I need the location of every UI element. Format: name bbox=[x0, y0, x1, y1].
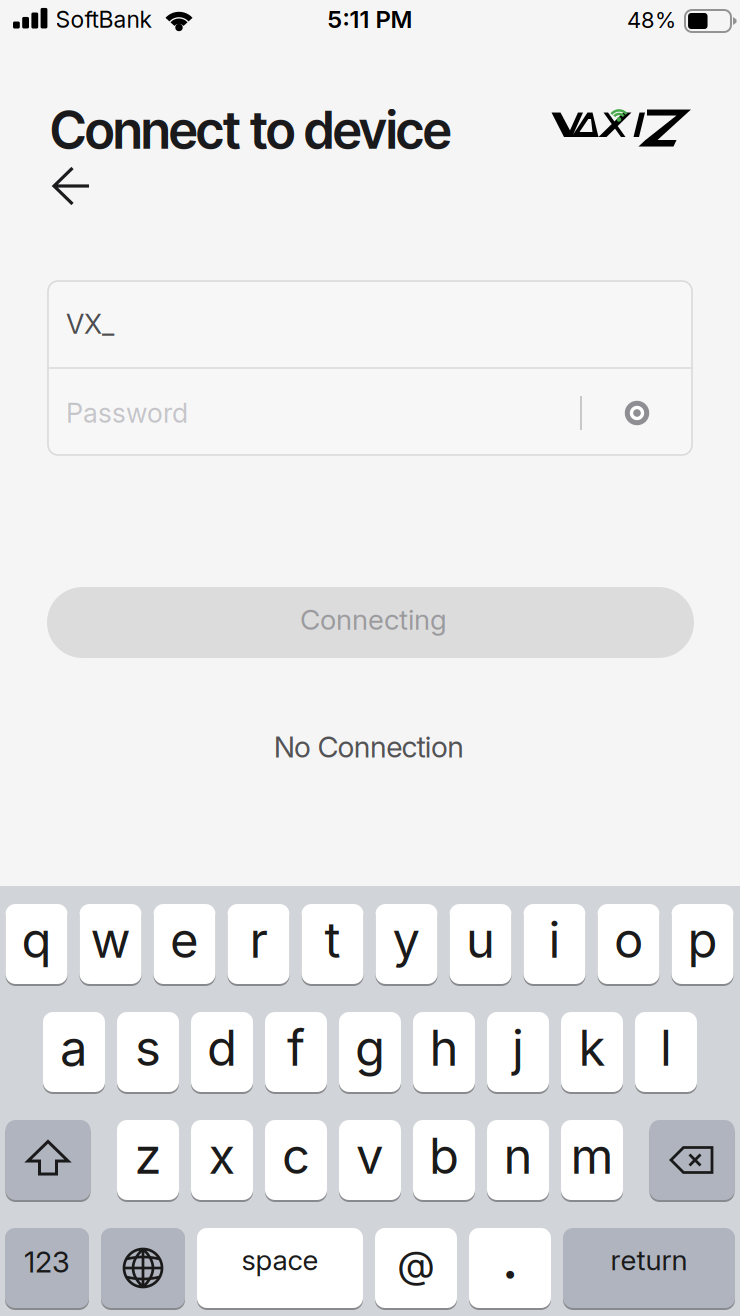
button[interactable]: l bbox=[635, 1011, 697, 1093]
button[interactable]: h bbox=[413, 1011, 475, 1093]
button[interactable]: return bbox=[563, 1227, 735, 1309]
button[interactable]: r bbox=[227, 903, 289, 985]
staticText: VX_ bbox=[66, 308, 114, 340]
button[interactable]: m bbox=[561, 1119, 623, 1201]
staticText: 48% bbox=[627, 7, 676, 33]
staticText: w bbox=[90, 910, 130, 970]
button[interactable]: Device name bbox=[66, 281, 692, 366]
button[interactable]: Next keyboard bbox=[101, 1227, 185, 1309]
staticText: No Connection bbox=[274, 729, 464, 765]
staticText: return bbox=[610, 1243, 687, 1277]
staticText: l bbox=[660, 1018, 672, 1078]
staticText: x bbox=[208, 1126, 235, 1186]
button[interactable]: Shift bbox=[5, 1119, 90, 1201]
staticText: Password bbox=[66, 397, 188, 429]
staticText: v bbox=[356, 1126, 384, 1186]
staticText: q bbox=[21, 910, 51, 970]
button[interactable]: x bbox=[191, 1119, 253, 1201]
button[interactable]: . bbox=[469, 1227, 551, 1309]
staticText: i bbox=[548, 910, 560, 970]
button[interactable]: @ bbox=[375, 1227, 457, 1309]
staticText: s bbox=[135, 1018, 161, 1078]
button[interactable]: u bbox=[449, 903, 511, 985]
button[interactable]: Back bbox=[41, 156, 101, 216]
button[interactable]: g bbox=[339, 1011, 401, 1093]
button[interactable]: n bbox=[487, 1119, 549, 1201]
button[interactable]: c bbox=[265, 1119, 327, 1201]
staticText: o bbox=[614, 910, 643, 970]
button[interactable]: j bbox=[487, 1011, 549, 1093]
staticText: 123 bbox=[24, 1244, 70, 1280]
button[interactable]: Connecting bbox=[47, 587, 694, 658]
staticText: @ bbox=[397, 1241, 434, 1287]
staticText: d bbox=[207, 1018, 237, 1078]
button[interactable]: space bbox=[197, 1227, 363, 1309]
button[interactable]: o bbox=[597, 903, 659, 985]
button[interactable]: d bbox=[191, 1011, 253, 1093]
button[interactable]: t bbox=[301, 903, 363, 985]
staticText: g bbox=[355, 1018, 385, 1078]
button[interactable]: w bbox=[79, 903, 141, 985]
staticText: y bbox=[392, 910, 420, 970]
staticText: n bbox=[503, 1126, 532, 1186]
staticText: f bbox=[287, 1018, 305, 1078]
staticText: t bbox=[324, 910, 340, 970]
staticText: z bbox=[134, 1126, 161, 1186]
staticText: h bbox=[429, 1018, 458, 1078]
staticText: 5:11 PM bbox=[327, 5, 412, 34]
button[interactable]: k bbox=[561, 1011, 623, 1093]
button[interactable]: a bbox=[43, 1011, 105, 1093]
button[interactable]: i bbox=[523, 903, 585, 985]
staticText: r bbox=[249, 910, 267, 970]
button[interactable]: Delete bbox=[649, 1119, 734, 1201]
staticText: SoftBank bbox=[55, 6, 151, 33]
staticText: j bbox=[512, 1018, 524, 1078]
staticText: a bbox=[60, 1018, 88, 1078]
button[interactable]: y bbox=[375, 903, 437, 985]
button[interactable]: f bbox=[265, 1011, 327, 1093]
button[interactable]: v bbox=[339, 1119, 401, 1201]
staticText: u bbox=[466, 910, 495, 970]
staticText: e bbox=[170, 910, 199, 970]
button[interactable]: Password bbox=[66, 370, 556, 455]
button[interactable]: e bbox=[153, 903, 215, 985]
button[interactable]: 123 bbox=[5, 1227, 89, 1309]
staticText: m bbox=[570, 1126, 613, 1186]
staticText: b bbox=[429, 1126, 459, 1186]
staticText: p bbox=[687, 910, 717, 970]
staticText: Connect to device bbox=[50, 99, 451, 161]
staticText: . bbox=[501, 1221, 518, 1293]
button[interactable]: p bbox=[671, 903, 733, 985]
staticText: Connecting bbox=[300, 603, 447, 636]
button[interactable]: z bbox=[117, 1119, 179, 1201]
button[interactable]: b bbox=[413, 1119, 475, 1201]
staticText: c bbox=[282, 1126, 310, 1186]
button[interactable]: q bbox=[5, 903, 67, 985]
staticText: k bbox=[578, 1018, 605, 1078]
staticText: space bbox=[241, 1243, 318, 1277]
button[interactable]: Show password bbox=[612, 388, 662, 438]
button[interactable]: s bbox=[117, 1011, 179, 1093]
